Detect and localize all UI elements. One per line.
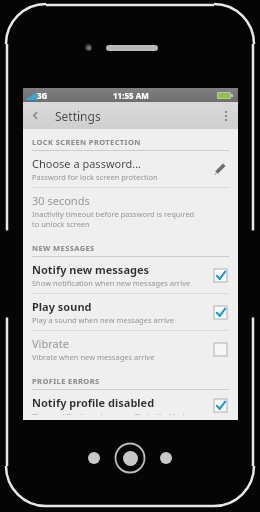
button[interactable]: Checked [210, 395, 230, 415]
staticText: Settings [55, 108, 101, 124]
staticText: Notify new messages [32, 262, 150, 277]
staticText: LOCK SCREEN PROTECTION [32, 137, 141, 147]
button[interactable]: Checked [210, 265, 230, 285]
button[interactable]: Notify profile disabled [23, 390, 238, 420]
staticText: 3G [37, 90, 48, 101]
button[interactable]: Notify new messages [23, 257, 238, 293]
button[interactable]: Play sound [23, 294, 238, 330]
staticText: PROFILE ERRORS [32, 376, 100, 386]
staticText: Notify profile disabled [32, 395, 155, 410]
staticText: Play a sound when new messages arrive [32, 315, 174, 325]
staticText: Vibrate [32, 336, 69, 351]
button[interactable]: Back [88, 452, 100, 464]
staticText: 11:55 AM [113, 90, 149, 101]
staticText: 30 seconds [32, 193, 90, 208]
button[interactable]: More options [214, 102, 238, 129]
button[interactable]: Back [23, 102, 47, 129]
button[interactable]: Menu [160, 452, 172, 464]
button[interactable]: Choose a password… [23, 151, 238, 187]
staticText: Inactivity timeout before password is re… [32, 209, 195, 229]
button[interactable]: Home [114, 442, 146, 474]
button[interactable]: Edit password [208, 158, 230, 180]
button[interactable]: Unchecked [210, 339, 230, 359]
staticText: NEW MESSAGES [32, 243, 95, 253]
staticText: Choose a password… [32, 156, 141, 171]
button[interactable]: Checked [210, 302, 230, 322]
button[interactable]: 30 seconds [23, 188, 238, 234]
button[interactable]: Vibrate [23, 331, 238, 367]
staticText: Vibrate when new messages arrive [32, 352, 155, 362]
staticText: Play sound [32, 299, 92, 314]
staticText: Show notification when new messages arri… [32, 278, 191, 288]
staticText: Show notification when a profile is disa… [32, 411, 185, 415]
staticText: Password for lock screen protection [32, 172, 158, 182]
